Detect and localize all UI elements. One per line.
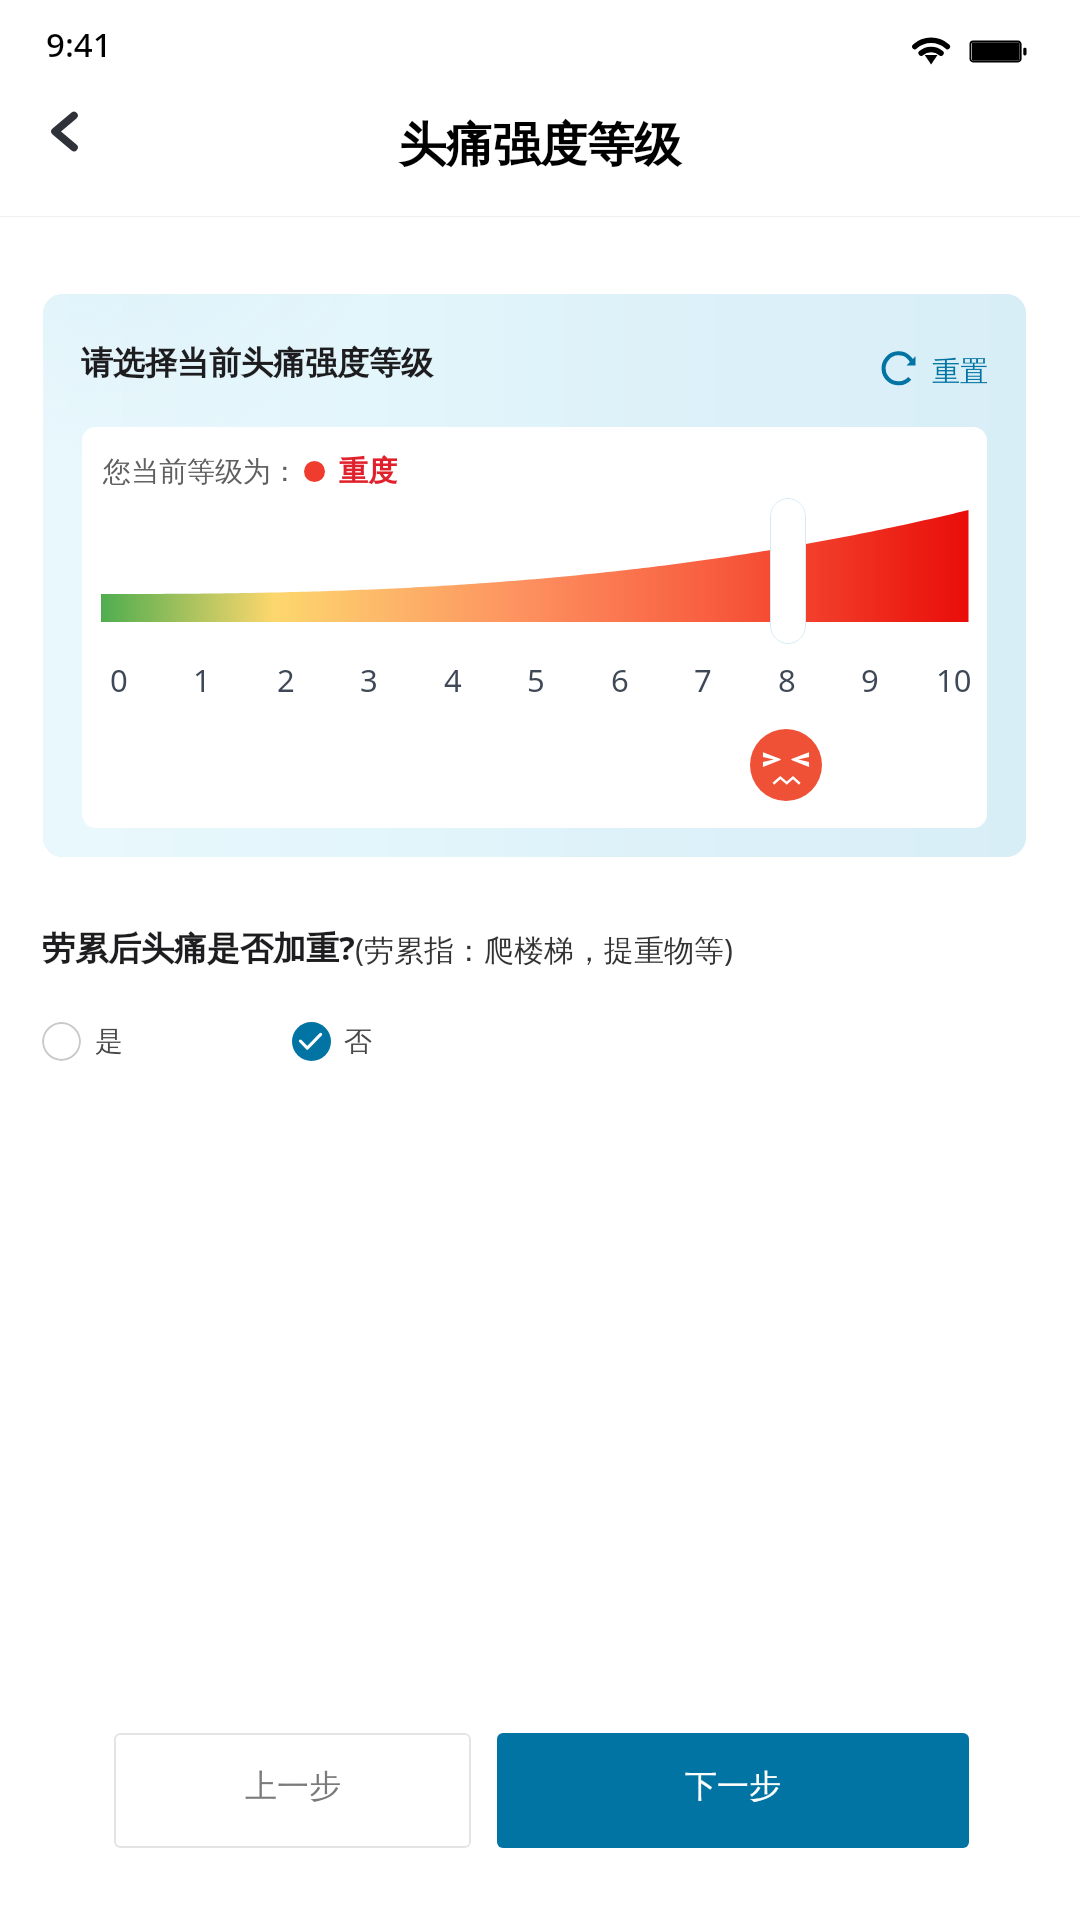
button[interactable]: 上一步 [114,1733,471,1848]
staticText: 8 [778,659,796,701]
staticText: 5 [527,659,545,701]
staticText: 是 [95,1024,123,1059]
staticText: 6 [611,659,629,701]
staticText: 上一步 [245,1766,341,1806]
button[interactable]: Back [14,91,112,171]
staticText: 9 [861,659,879,701]
staticText: 劳累后头痛是否加重? [42,925,355,970]
staticText: 10 [936,659,972,701]
staticText: 您当前等级为： [103,454,299,489]
staticText: 头痛强度等级 [399,116,681,175]
staticText: (劳累指：爬楼梯，提重物等) [355,929,733,970]
button[interactable]: 重置 [871,338,1026,402]
staticText: 否 [344,1024,372,1059]
staticText: 2 [277,659,295,701]
staticText: 1 [193,659,211,701]
staticText: 请选择当前头痛强度等级 [81,343,433,383]
staticText: 重置 [932,354,988,389]
staticText: 0 [110,659,128,701]
button[interactable]: 否 [288,1015,355,1067]
button[interactable]: 是 [38,1015,105,1067]
button[interactable]: Intensity level 8 [770,498,806,644]
staticText: 下一步 [685,1766,781,1806]
staticText: 4 [444,659,462,701]
staticText: 9:41 [46,22,112,67]
staticText: 重度 [339,453,397,490]
staticText: 3 [360,659,378,701]
button[interactable]: 下一步 [497,1733,969,1848]
staticText: 7 [694,659,712,701]
